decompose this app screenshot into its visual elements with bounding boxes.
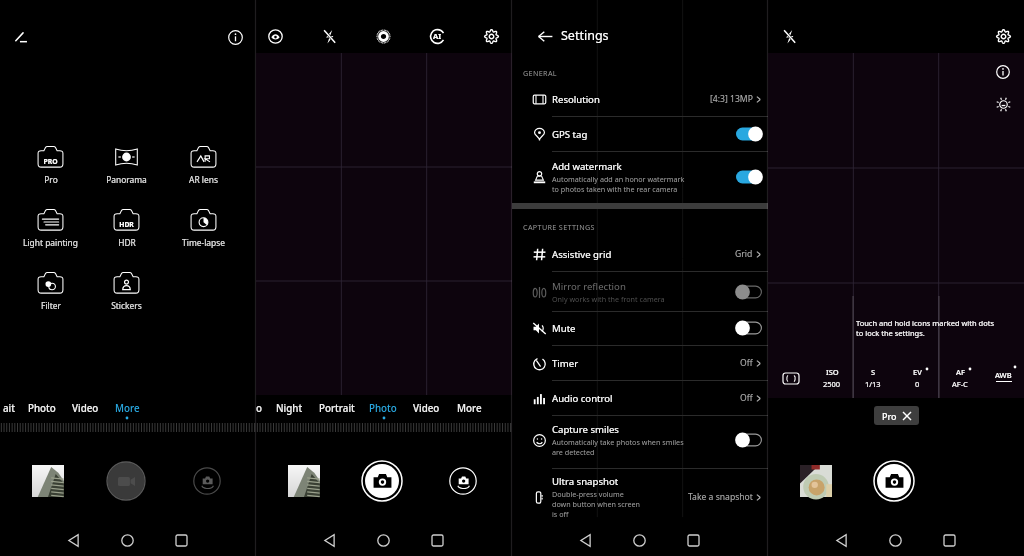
staticText: Take a snapshot — [688, 491, 753, 503]
button[interactable]: Recents — [934, 525, 964, 555]
button[interactable]: More — [112, 399, 143, 417]
button[interactable]: Ultra snapshot — [512, 473, 768, 521]
button[interactable]: Back — [530, 21, 560, 51]
button[interactable]: Gallery — [288, 465, 320, 497]
button[interactable]: Recents — [678, 525, 708, 555]
staticText: Only works with the front camera — [552, 294, 665, 304]
button[interactable]: Shutter — [106, 461, 146, 501]
button[interactable]: Toggle — [736, 126, 762, 142]
button[interactable]: Switch camera — [449, 467, 477, 495]
staticText: EV — [913, 367, 922, 377]
button[interactable]: Info — [220, 22, 250, 52]
button[interactable]: Settings — [990, 23, 1016, 49]
button[interactable]: Back — [826, 525, 856, 555]
staticText: Automatically take photos when smiles ar… — [552, 437, 684, 457]
staticText: AF-C — [952, 379, 968, 389]
button[interactable]: Back — [570, 525, 600, 555]
button[interactable]: Capture smiles — [512, 421, 768, 459]
button[interactable]: Photo — [366, 399, 400, 417]
staticText: Off — [740, 357, 753, 369]
button[interactable]: Shutter — [361, 460, 403, 502]
button[interactable]: Flash off — [776, 23, 802, 49]
button[interactable]: Pro — [874, 406, 919, 425]
button[interactable]: ISO — [810, 365, 854, 391]
button[interactable]: Timer — [512, 349, 768, 377]
button[interactable]: Home — [624, 525, 654, 555]
staticText: CAPTURE SETTINGS — [523, 222, 595, 232]
staticText: HDR — [118, 237, 136, 248]
staticText: Capture smiles — [552, 423, 619, 436]
button[interactable]: Time-lapse — [169, 209, 237, 253]
staticText: GENERAL — [523, 68, 557, 78]
button[interactable]: Resolution — [512, 85, 768, 113]
staticText: S — [871, 367, 876, 377]
button[interactable]: Metering — [778, 368, 804, 388]
button[interactable]: HDR — [92, 209, 160, 253]
button[interactable]: Home — [112, 525, 142, 555]
button[interactable]: Video — [69, 399, 102, 417]
button[interactable]: Mute — [512, 314, 768, 342]
button[interactable]: o — [253, 399, 265, 417]
button[interactable]: Panorama — [92, 146, 160, 190]
button[interactable]: S — [851, 365, 895, 391]
button[interactable]: Audio control — [512, 384, 768, 412]
staticText: AR lens — [189, 174, 218, 185]
button[interactable]: EV — [895, 365, 939, 391]
button[interactable]: Stickers — [92, 272, 160, 316]
staticText: HDR — [119, 220, 134, 229]
staticText: ISO — [826, 367, 839, 377]
button[interactable]: AI master — [424, 23, 450, 49]
staticText: Off — [740, 392, 753, 404]
staticText: 2500 — [823, 379, 841, 389]
button[interactable]: Flash off — [316, 23, 342, 49]
button[interactable]: Toggle — [736, 432, 762, 448]
button[interactable]: Gallery — [800, 465, 832, 497]
button[interactable]: Light painting — [16, 209, 84, 253]
button[interactable]: AWB — [981, 365, 1024, 391]
button[interactable]: ait — [0, 399, 19, 417]
button[interactable]: Back — [314, 525, 344, 555]
staticText: More — [457, 402, 482, 415]
button[interactable]: Exposure — [990, 91, 1016, 117]
button[interactable]: Info — [990, 59, 1016, 85]
button[interactable]: Portrait — [316, 399, 358, 417]
button[interactable]: Recents — [422, 525, 452, 555]
button[interactable]: Aperture — [262, 23, 288, 49]
button[interactable]: Home — [880, 525, 910, 555]
button[interactable]: AF — [938, 365, 982, 391]
button[interactable]: Night — [273, 399, 306, 417]
button[interactable]: Settings — [478, 23, 504, 49]
staticText: Automatically add an honor watermark to … — [552, 174, 685, 194]
button[interactable]: GPS tag — [512, 120, 768, 148]
button[interactable]: Shutter — [873, 460, 915, 502]
staticText: AI — [433, 31, 442, 41]
staticText: ait — [3, 402, 16, 415]
button[interactable]: Photo — [25, 399, 59, 417]
button[interactable]: Recents — [166, 525, 196, 555]
staticText: PRO — [43, 157, 58, 166]
button[interactable]: Toggle — [736, 284, 762, 300]
button[interactable]: Switch camera — [193, 467, 221, 495]
staticText: GPS tag — [552, 128, 588, 141]
button[interactable]: Back — [58, 525, 88, 555]
staticText: Mute — [552, 322, 576, 335]
button[interactable]: Edit modes — [6, 22, 36, 52]
staticText: Video — [72, 402, 99, 415]
staticText: Grid — [735, 248, 753, 260]
button[interactable]: AR lens — [169, 146, 237, 190]
button[interactable]: Gallery — [32, 465, 64, 497]
staticText: Video — [413, 402, 440, 415]
button[interactable]: Home — [368, 525, 398, 555]
button[interactable]: Add watermark — [512, 158, 768, 196]
staticText: Timer — [552, 357, 579, 370]
staticText: Photo — [369, 402, 397, 415]
button[interactable]: Color mode — [370, 23, 396, 49]
button[interactable]: Toggle — [736, 320, 762, 336]
button[interactable]: Pro — [16, 146, 84, 190]
button[interactable]: More — [454, 399, 485, 417]
button[interactable]: Assistive grid — [512, 240, 768, 268]
button[interactable]: Filter — [16, 272, 84, 316]
button[interactable]: Mirror reflection — [512, 273, 768, 311]
button[interactable]: Video — [410, 399, 443, 417]
button[interactable]: Toggle — [736, 169, 762, 185]
